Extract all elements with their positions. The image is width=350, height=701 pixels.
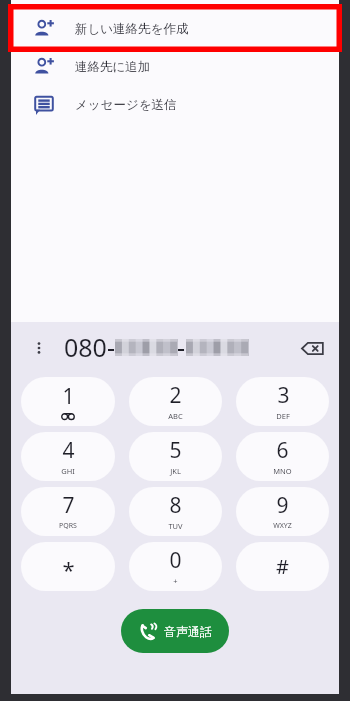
- staticText: 5: [169, 436, 182, 465]
- staticText: TUV: [168, 521, 183, 531]
- staticText: 新しい連絡先を作成: [75, 21, 189, 37]
- button[interactable]: 8: [129, 487, 222, 536]
- staticText: GHI: [61, 466, 75, 476]
- staticText: WXYZ: [273, 521, 292, 531]
- button[interactable]: 1: [21, 377, 115, 426]
- button[interactable]: 3: [236, 377, 329, 426]
- button[interactable]: 5: [129, 432, 222, 481]
- staticText: #: [276, 553, 289, 580]
- button[interactable]: 音声通話: [121, 609, 229, 653]
- button[interactable]: 2: [129, 377, 222, 426]
- button[interactable]: More options: [27, 336, 51, 360]
- button[interactable]: 6: [236, 432, 329, 481]
- staticText: DEF: [276, 411, 290, 421]
- button[interactable]: 新しい連絡先を作成: [11, 10, 339, 48]
- staticText: 0: [169, 546, 182, 575]
- button[interactable]: *: [21, 542, 115, 591]
- staticText: 連絡先に追加: [75, 59, 151, 75]
- staticText: 6: [276, 436, 289, 465]
- staticText: メッセージを送信: [75, 97, 177, 113]
- staticText: ABC: [168, 411, 183, 421]
- button[interactable]: #: [236, 542, 329, 591]
- staticText: 9: [276, 491, 289, 520]
- staticText: 1: [62, 382, 75, 411]
- staticText: -: [177, 330, 186, 364]
- button[interactable]: Backspace: [295, 331, 329, 365]
- staticText: 3: [277, 381, 290, 410]
- staticText: 080-: [64, 330, 115, 364]
- staticText: *: [62, 554, 75, 584]
- staticText: 音声通話: [164, 624, 212, 639]
- staticText: 7: [62, 491, 75, 520]
- button[interactable]: 7: [21, 487, 115, 536]
- button[interactable]: 連絡先に追加: [11, 48, 339, 86]
- button[interactable]: 9: [236, 487, 329, 536]
- button[interactable]: 0: [129, 542, 222, 591]
- staticText: 4: [62, 436, 75, 465]
- button[interactable]: 4: [21, 432, 115, 481]
- staticText: +: [173, 576, 178, 586]
- button[interactable]: メッセージを送信: [11, 86, 339, 124]
- staticText: PQRS: [59, 521, 77, 531]
- staticText: 2: [169, 381, 182, 410]
- staticText: MNO: [273, 466, 292, 476]
- staticText: JKL: [170, 466, 181, 476]
- staticText: 8: [169, 491, 182, 520]
